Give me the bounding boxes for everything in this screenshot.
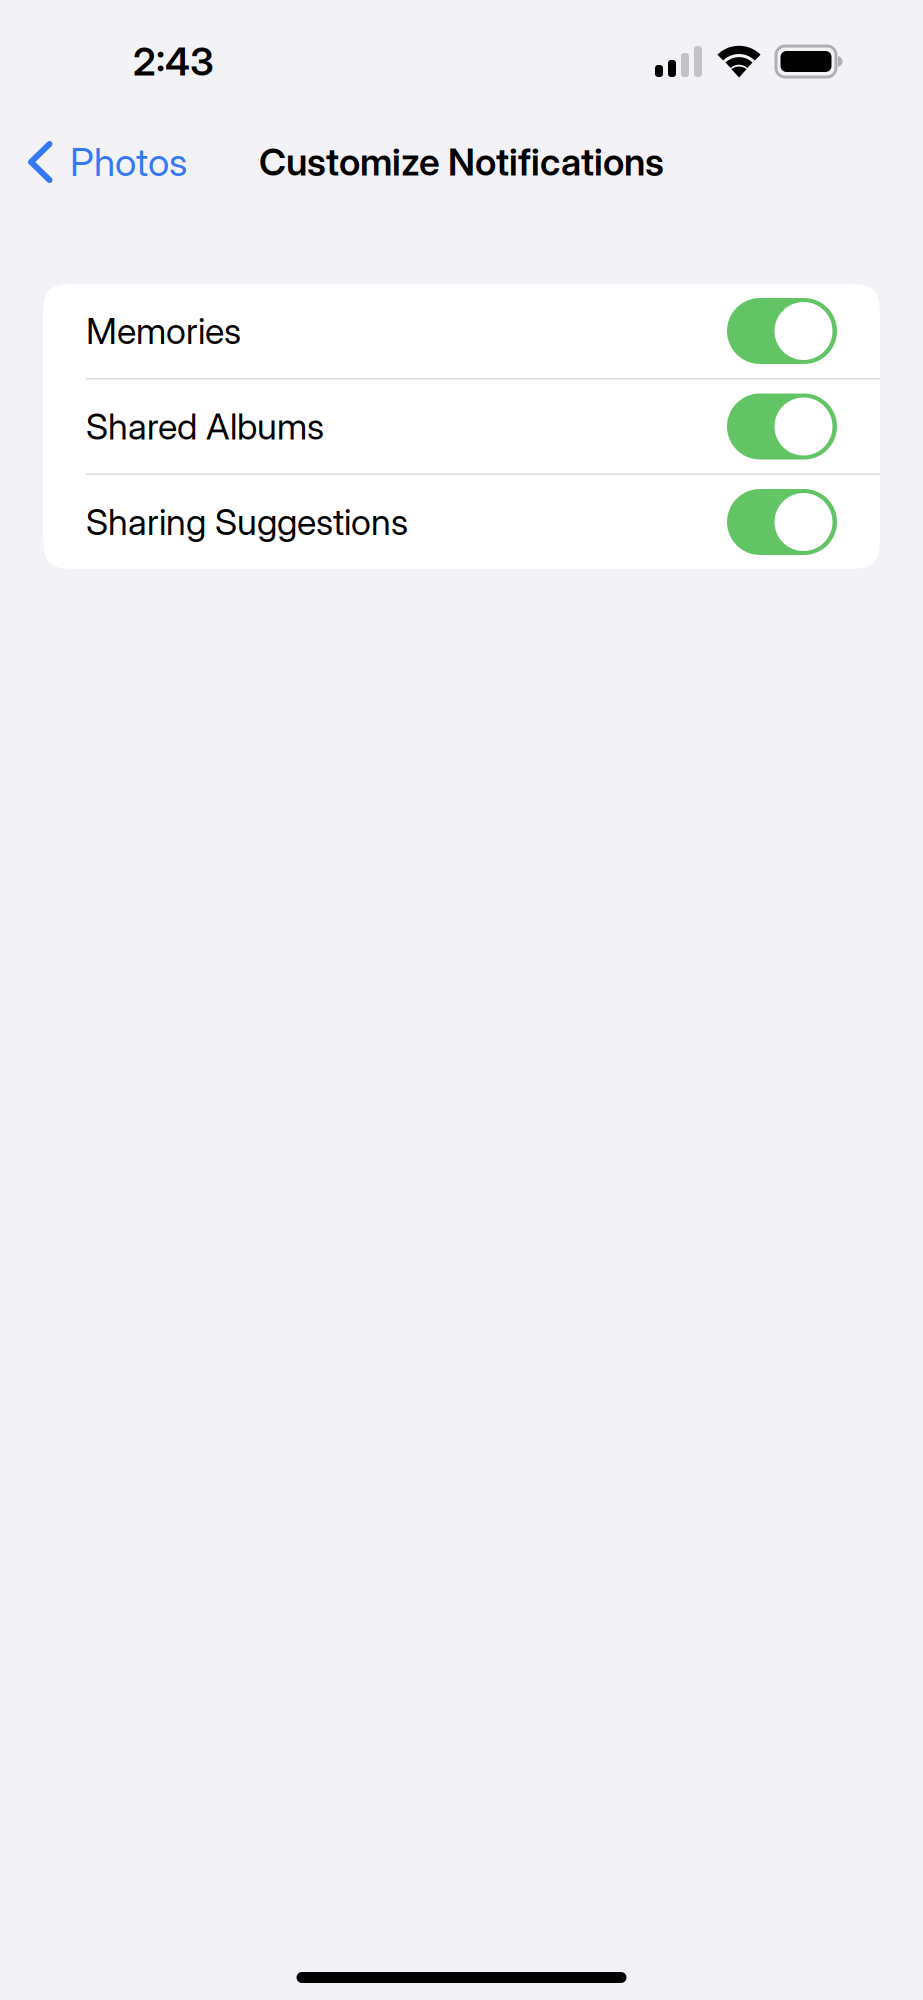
staticText: 2:43 [133, 38, 214, 85]
staticText: Sharing Suggestions [86, 500, 408, 544]
button[interactable]: Sharing Suggestions notifications [727, 489, 837, 555]
button[interactable]: Shared Albums notifications [727, 393, 837, 459]
button[interactable]: Memories [43, 284, 880, 378]
staticText: Shared Albums [86, 405, 324, 448]
staticText: Memories [86, 309, 241, 353]
button[interactable]: Photos [0, 123, 211, 201]
staticText: Customize Notifications [259, 139, 664, 185]
staticText: Photos [70, 139, 187, 185]
button[interactable]: Shared Albums [43, 379, 880, 473]
button[interactable]: Sharing Suggestions [43, 475, 880, 569]
button[interactable]: Memories notifications [727, 298, 837, 364]
